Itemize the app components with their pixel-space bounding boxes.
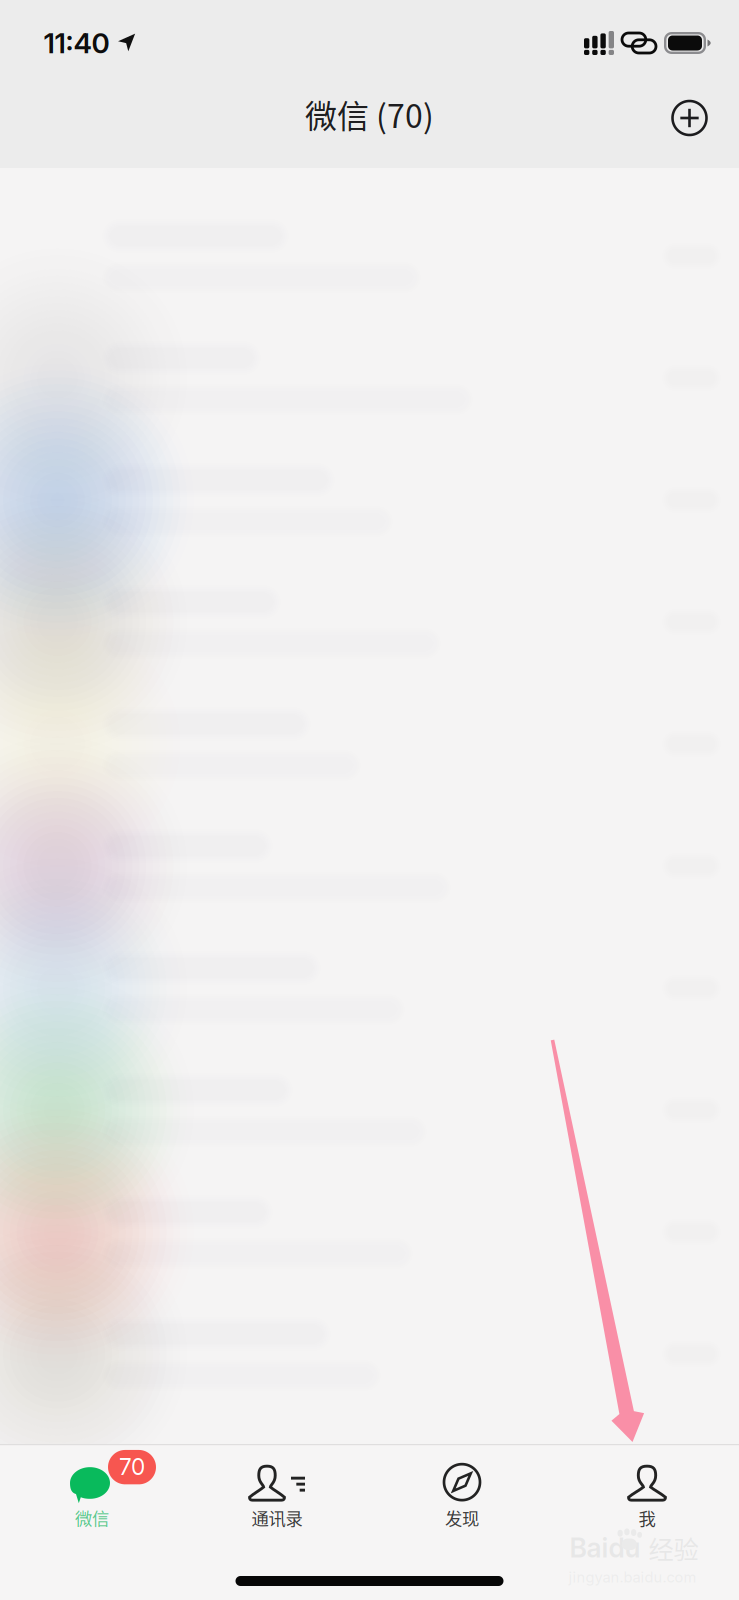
staticText: 通讯录 xyxy=(251,1505,302,1530)
staticText: 发现 xyxy=(445,1505,479,1530)
staticText: Baidu xyxy=(569,1532,640,1564)
button[interactable]: 发现 xyxy=(369,1445,554,1545)
staticText: 70 xyxy=(119,1453,145,1480)
staticText: 微信 xyxy=(75,1505,109,1530)
staticText: 11:40 xyxy=(43,26,109,60)
button[interactable]: 70 xyxy=(0,1445,184,1545)
button[interactable]: 我 xyxy=(554,1445,739,1545)
staticText: 微信 (70) xyxy=(305,91,434,137)
staticText: 经验 xyxy=(648,1530,698,1566)
button[interactable]: New chat xyxy=(656,85,722,151)
staticText: 我 xyxy=(638,1505,655,1530)
button[interactable]: 通讯录 xyxy=(184,1445,369,1545)
